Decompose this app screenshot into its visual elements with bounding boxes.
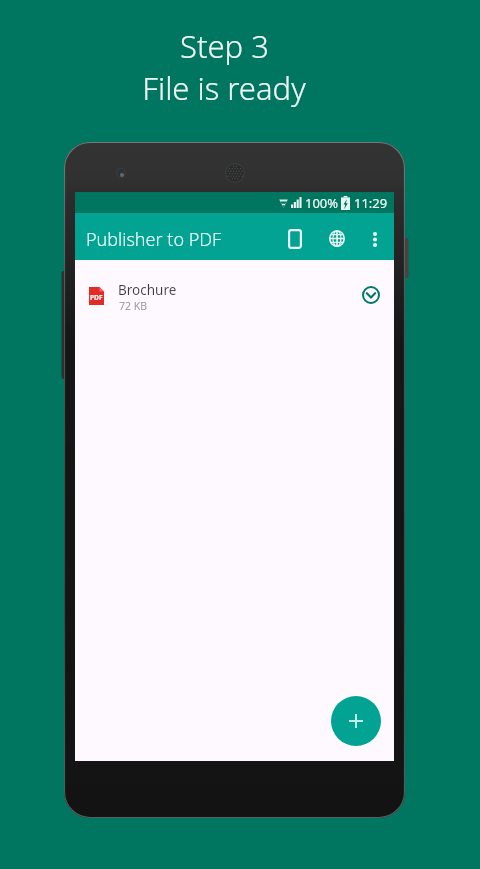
staticText: 72 KB bbox=[119, 299, 148, 313]
staticText: Brochure bbox=[118, 281, 177, 299]
staticText: 100% bbox=[305, 194, 339, 212]
button[interactable]: Add bbox=[331, 696, 381, 746]
button[interactable]: More options bbox=[357, 221, 393, 257]
staticText: Step 3 bbox=[180, 25, 269, 67]
staticText: Publisher to PDF bbox=[86, 227, 222, 252]
staticText: 11:29 bbox=[354, 194, 388, 212]
button[interactable]: Device bbox=[277, 221, 313, 257]
staticText: File is ready bbox=[142, 67, 306, 109]
button[interactable]: Web bbox=[319, 221, 355, 255]
button[interactable]: PDF bbox=[75, 260, 394, 314]
button[interactable]: Expand bbox=[353, 277, 389, 313]
staticText: PDF bbox=[90, 293, 103, 302]
